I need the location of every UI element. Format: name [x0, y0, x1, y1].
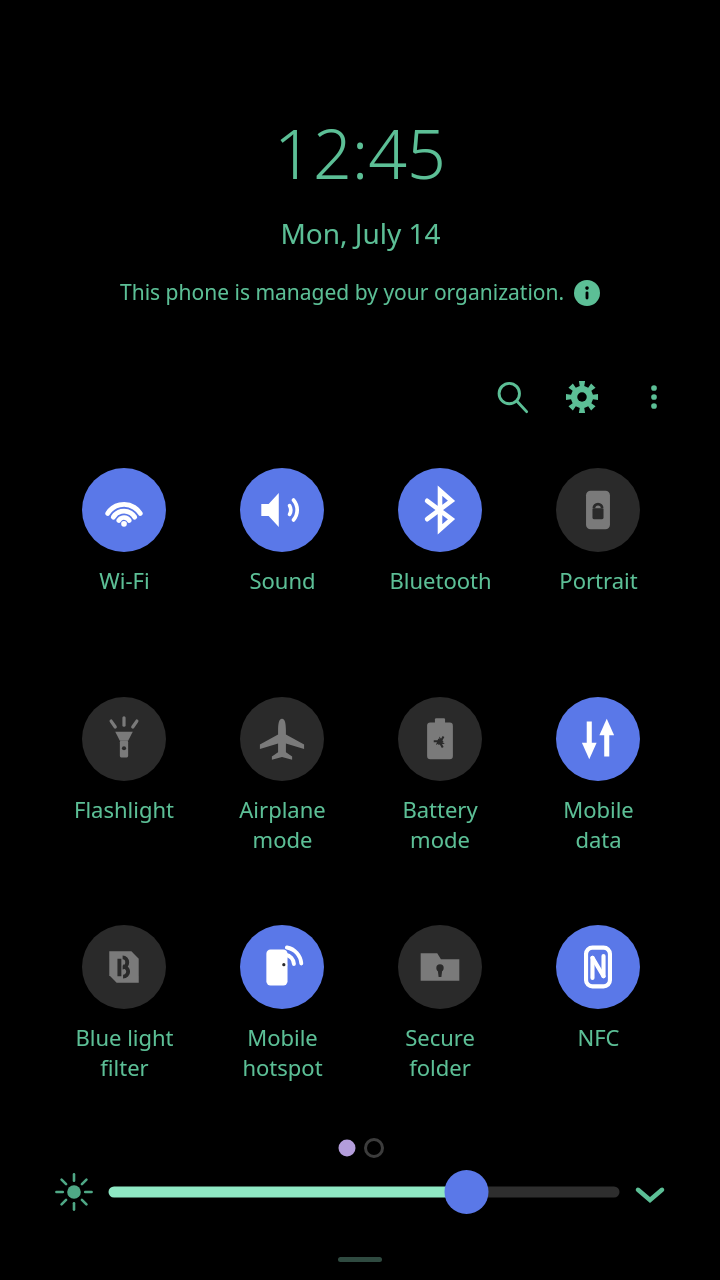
staticText: This phone is managed by your organizati… [120, 278, 565, 307]
staticText: NFC [577, 1022, 620, 1052]
button[interactable]: Portrait [522, 468, 674, 595]
staticText: Airplane mode [239, 794, 326, 854]
staticText: Sound [249, 565, 316, 595]
staticText: Mobile hotspot [242, 1022, 323, 1082]
button[interactable]: Bluetooth [364, 468, 516, 595]
button[interactable]: Secure folder [364, 925, 516, 1082]
button[interactable]: More options [623, 366, 685, 428]
button[interactable]: Mobile data [522, 697, 674, 854]
staticText: Flashlight [74, 794, 174, 824]
button[interactable]: Battery mode [364, 697, 516, 854]
staticText: Portrait [559, 565, 638, 595]
button[interactable]: Brightness [106, 1168, 622, 1216]
button[interactable]: Auto brightness [48, 1166, 100, 1218]
staticText: Mobile data [563, 794, 634, 854]
staticText: Mon, July 14 [280, 214, 441, 252]
staticText: Blue light filter [75, 1022, 174, 1082]
button[interactable]: Expand [622, 1166, 678, 1222]
staticText: Secure folder [405, 1022, 475, 1082]
button[interactable]: Search [481, 366, 543, 428]
button[interactable]: Airplane mode [206, 697, 358, 854]
staticText: Battery mode [402, 794, 478, 854]
button[interactable]: Wi-Fi [48, 468, 200, 595]
button[interactable]: Flashlight [48, 697, 200, 824]
staticText: Bluetooth [389, 565, 492, 595]
button[interactable]: Settings [551, 366, 613, 428]
button[interactable]: Mobile hotspot [206, 925, 358, 1082]
button[interactable]: Blue light filter [48, 925, 200, 1082]
staticText: Wi-Fi [99, 565, 150, 595]
button[interactable]: NFC [522, 925, 674, 1052]
staticText: 12:45 [274, 106, 446, 199]
button[interactable]: Sound [206, 468, 358, 595]
button[interactable]: This phone is managed by your organizati… [0, 278, 720, 307]
